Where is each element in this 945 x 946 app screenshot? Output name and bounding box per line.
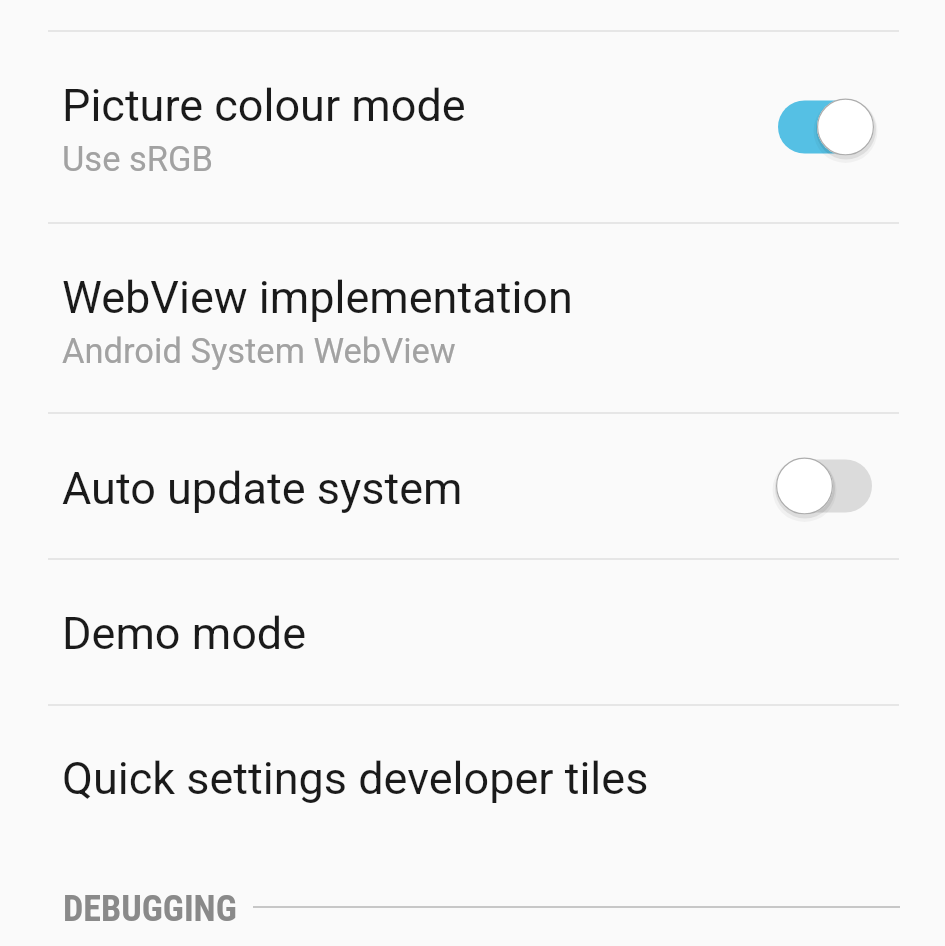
button[interactable]: Quick settings developer tiles	[0, 706, 945, 856]
staticText: Use sRGB	[62, 139, 214, 179]
staticText: Auto update system	[62, 462, 463, 515]
staticText: Quick settings developer tiles	[62, 752, 649, 805]
staticText: DEBUGGING	[63, 888, 237, 930]
staticText: Android System WebView	[62, 331, 456, 371]
button[interactable]: Picture colour mode, on	[750, 72, 900, 182]
staticText: Demo mode	[62, 607, 307, 660]
button[interactable]: Demo mode	[0, 560, 945, 704]
button[interactable]: Picture colour mode	[0, 32, 945, 222]
staticText: Picture colour mode	[62, 79, 466, 132]
button[interactable]: WebView implementation	[0, 224, 945, 412]
staticText: WebView implementation	[62, 271, 573, 324]
button[interactable]: Auto update system	[0, 414, 945, 558]
button[interactable]: Auto update system, off	[750, 431, 900, 541]
